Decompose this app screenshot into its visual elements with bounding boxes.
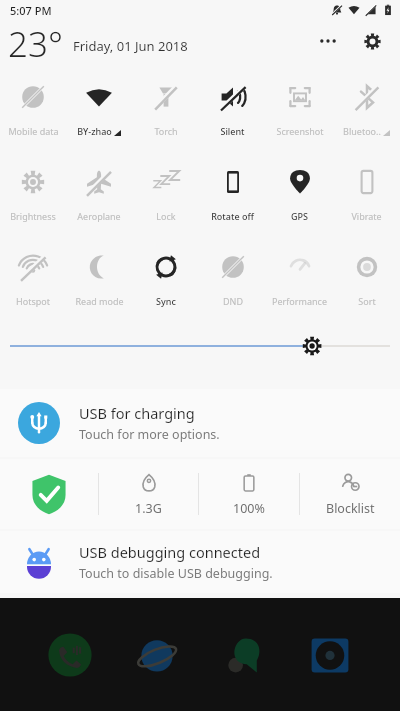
staticText: 5:07 PM [10,3,52,18]
button[interactable]: Sync [132,236,199,321]
staticText: Blocklist [326,500,375,517]
staticText: Aeroplane [77,210,121,222]
button[interactable]: Mobile data [0,66,66,151]
button[interactable]: Aeroplane [66,151,132,236]
button[interactable]: More options [310,23,346,59]
staticText: Sync [156,295,176,307]
button[interactable]: Sort [333,236,400,321]
staticText: Bluetoo.. [343,125,381,137]
button[interactable]: Vibrate [333,151,400,236]
staticText: Sort [358,295,376,307]
button[interactable]: Silent [199,66,266,151]
button[interactable]: Rotate off [199,151,266,236]
button[interactable]: Brightness [0,151,66,236]
button[interactable]: Torch [132,66,199,151]
staticText: DND [223,295,243,307]
staticText: USB debugging connected [79,542,261,562]
button[interactable]: 100% [199,459,299,529]
staticText: Lock [156,210,176,222]
button[interactable]: Hotspot [0,236,66,321]
button[interactable]: Lock [132,151,199,236]
button[interactable]: Screenshot [266,66,333,151]
button[interactable]: DND [199,236,266,321]
button[interactable]: Brightness slider [0,331,400,361]
button[interactable]: 1.3G [99,459,198,529]
button[interactable]: BY-zhao [66,66,132,151]
button[interactable]: Browser [126,624,188,686]
staticText: Touch to disable USB debugging. [79,565,273,582]
staticText: Hotspot [16,295,50,307]
button[interactable]: Camera [299,624,361,686]
button[interactable]: GPS [266,151,333,236]
button[interactable]: Messages [212,624,274,686]
staticText: 23° [8,20,63,62]
button[interactable]: Phone [39,624,101,686]
staticText: Friday, 01 Jun 2018 [73,37,188,55]
button[interactable]: USB debugging connected [0,531,400,593]
staticText: 100% [233,500,265,517]
button[interactable]: Performance [266,236,333,321]
button[interactable]: USB for charging [0,389,400,457]
button[interactable]: Blocklist [300,459,400,529]
staticText: Vibrate [351,210,382,222]
staticText: USB for charging [79,403,195,423]
button[interactable]: Read mode [66,236,132,321]
staticText: Touch for more options. [79,426,220,443]
staticText: Performance [272,295,327,307]
staticText: 1.3G [135,500,162,517]
staticText: Silent [220,125,245,137]
button[interactable]: Security scan [0,459,98,529]
staticText: Read mode [75,295,124,307]
button[interactable]: Bluetoo.. [333,66,400,151]
staticText: GPS [291,210,308,222]
staticText: Torch [154,125,178,137]
button[interactable]: Settings [354,23,390,59]
staticText: BY-zhao [77,125,112,137]
staticText: Mobile data [8,125,59,137]
staticText: Brightness [10,210,56,222]
staticText: Screenshot [276,125,324,137]
staticText: Rotate off [211,210,254,222]
